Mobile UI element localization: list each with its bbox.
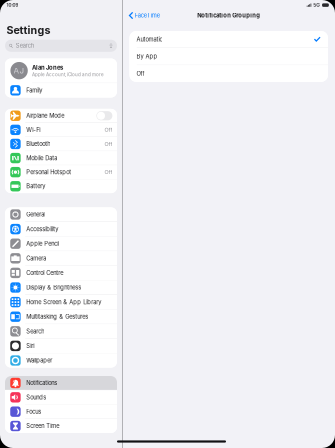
staticText: Search [26,328,44,335]
staticText: Notifications [26,379,57,386]
button[interactable]: Home Screen & App Library [5,295,117,309]
staticText: Off [104,127,112,133]
staticText: Off [104,141,112,147]
button[interactable]: Siri [5,339,117,353]
button[interactable]: Focus [5,405,117,419]
button[interactable]: Control Centre [5,266,117,280]
button[interactable]: Sounds [5,390,117,404]
staticText: Family [26,87,42,94]
staticText: Wi-Fi [26,126,40,133]
staticText: Wallpaper [26,357,52,364]
button[interactable]: Mobile Data [5,151,117,165]
staticText: Control Centre [26,269,63,276]
staticText: Settings [7,24,51,36]
button[interactable]: Display & Brightness [5,280,117,295]
staticText: Sounds [26,394,46,401]
button[interactable]: Multitasking & Gestures [5,310,117,324]
button[interactable]: Family [5,83,117,97]
button[interactable]: Wi-Fi [5,123,117,137]
staticText: Accessibility [26,226,58,232]
button[interactable]: Personal Hotspot [5,165,117,179]
button[interactable]: Accessibility [5,222,117,236]
staticText: General [26,211,45,218]
staticText: Bluetooth [26,140,50,147]
button[interactable]: Off [129,65,328,82]
button[interactable]: FaceTime [122,9,160,22]
button[interactable]: AJ [5,58,117,83]
staticText: By App [136,53,157,60]
staticText: Off [104,169,112,175]
staticText: 5G [313,2,320,8]
staticText: Apple Pencil [26,240,59,247]
button[interactable]: Battery [5,179,117,193]
button[interactable]: Camera [5,251,117,265]
staticText: Search [16,42,34,49]
staticText: Notification Grouping [197,12,260,19]
staticText: Multitasking & Gestures [26,313,88,320]
staticText: Battery [26,183,45,190]
staticText: Screen Time [26,423,59,429]
staticText: Automatic [136,36,162,43]
button[interactable]: Search [5,324,117,338]
staticText: Off [136,70,144,77]
staticText: Focus [26,408,41,415]
staticText: FaceTime [135,12,160,19]
button[interactable]: By App [129,48,328,65]
staticText: Mobile Data [26,155,57,161]
staticText: Siri [26,342,34,349]
button[interactable]: Bluetooth [5,137,117,151]
button[interactable]: Notifications [5,376,117,390]
button[interactable]: Screen Time [5,419,117,433]
staticText: 10:09 [6,2,18,8]
button[interactable]: Search [5,40,117,52]
staticText: Display & Brightness [26,284,81,291]
staticText: AJ [14,66,25,75]
staticText: Alan Jones [32,64,63,71]
button[interactable]: Airplane Mode [5,109,117,123]
button[interactable]: Apple Pencil [5,237,117,251]
staticText: Camera [26,255,46,262]
button[interactable]: Wallpaper [5,353,117,368]
button[interactable]: Automatic [129,31,328,48]
staticText: Apple Account, iCloud and more [32,72,104,77]
staticText: Home Screen & App Library [26,299,101,305]
staticText: Personal Hotspot [26,169,71,176]
button[interactable]: General [5,207,117,222]
staticText: Airplane Mode [26,112,64,119]
